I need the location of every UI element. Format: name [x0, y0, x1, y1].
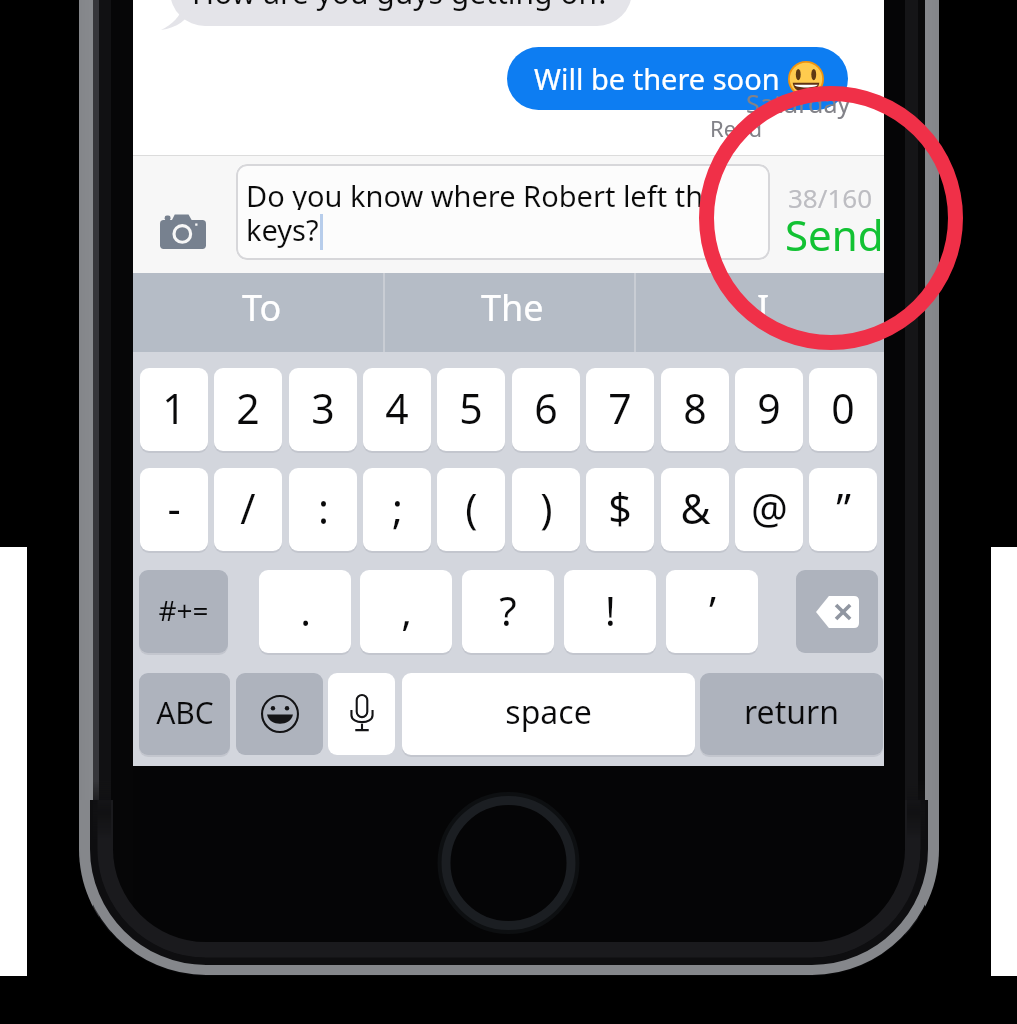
button[interactable]: $ [586, 468, 654, 551]
button[interactable]: . [259, 570, 351, 653]
staticText: 9 [757, 380, 781, 436]
button[interactable]: space [402, 673, 695, 755]
button[interactable]: : [289, 468, 357, 551]
staticText: 2 [236, 380, 260, 436]
staticText: I [757, 283, 770, 332]
staticText: & [680, 480, 711, 536]
button[interactable]: 6 [512, 368, 580, 451]
button[interactable]: & [661, 468, 729, 551]
staticText: Will be there soon [534, 59, 780, 98]
staticText: How are you guys getting on? [192, 0, 611, 13]
staticText: ? [499, 583, 517, 637]
staticText: Saturday [746, 86, 851, 120]
staticText: ; [392, 480, 403, 536]
staticText: 8 [683, 380, 707, 436]
staticText: return [744, 690, 839, 734]
staticText: 0 [831, 380, 855, 436]
staticText: 6 [534, 380, 558, 436]
staticText: 38/160 [788, 180, 873, 215]
button[interactable]: ’ [666, 570, 758, 653]
button[interactable]: ) [512, 468, 580, 551]
staticText: : [318, 480, 329, 536]
button[interactable]: 2 [214, 368, 282, 451]
button[interactable]: 4 [363, 368, 431, 451]
button[interactable]: return [700, 673, 883, 755]
button[interactable]: ! [564, 570, 656, 653]
staticText: / [240, 480, 256, 536]
button[interactable]: ” [809, 468, 877, 551]
staticText: , [401, 583, 412, 637]
button[interactable]: #+= [139, 570, 228, 653]
staticText: 1 [162, 380, 186, 436]
button[interactable]: 0 [809, 368, 877, 451]
staticText: ” [836, 480, 851, 536]
staticText: #+= [158, 591, 209, 629]
button[interactable]: 9 [735, 368, 803, 451]
button[interactable]: - [140, 468, 208, 551]
button[interactable]: Backspace [796, 570, 878, 653]
staticText: ! [605, 583, 616, 637]
staticText: - [167, 480, 181, 536]
button[interactable]: ABC [139, 673, 230, 755]
staticText: ABC [156, 692, 214, 733]
staticText: 5 [459, 380, 483, 436]
staticText: ( [465, 480, 478, 536]
button[interactable]: ? [462, 570, 554, 653]
button[interactable]: 8 [661, 368, 729, 451]
button[interactable]: 5 [437, 368, 505, 451]
button[interactable]: Dictation [328, 673, 395, 755]
staticText: 7 [608, 380, 632, 436]
button[interactable]: 3 [289, 368, 357, 451]
staticText: Read [710, 113, 762, 143]
staticText: space [505, 690, 592, 734]
staticText: $ [608, 480, 632, 536]
staticText: ) [540, 480, 553, 536]
staticText: keys? [246, 210, 319, 249]
staticText: Send [785, 206, 884, 263]
button[interactable]: Send [785, 206, 884, 263]
button[interactable]: Camera [154, 208, 214, 256]
button[interactable]: I [638, 268, 888, 347]
button[interactable]: , [360, 570, 452, 653]
staticText: The [481, 283, 544, 332]
button[interactable]: The [387, 268, 637, 347]
button[interactable]: 1 [140, 368, 208, 451]
button[interactable]: ; [363, 468, 431, 551]
staticText: ’ [709, 583, 716, 637]
staticText: . [300, 583, 311, 637]
staticText: To [242, 283, 282, 332]
staticText: 3 [311, 380, 335, 436]
button[interactable]: @ [735, 468, 803, 551]
staticText: 4 [385, 380, 409, 436]
button[interactable]: ( [437, 468, 505, 551]
button[interactable]: Do you know where Robert left th [236, 164, 770, 260]
button[interactable]: To [137, 268, 387, 347]
staticText: Do you know where Robert left th [246, 176, 704, 210]
staticText: @ [751, 480, 788, 536]
button[interactable]: / [214, 468, 282, 551]
button[interactable]: 7 [586, 368, 654, 451]
button[interactable]: Emoji keyboard [236, 673, 323, 755]
